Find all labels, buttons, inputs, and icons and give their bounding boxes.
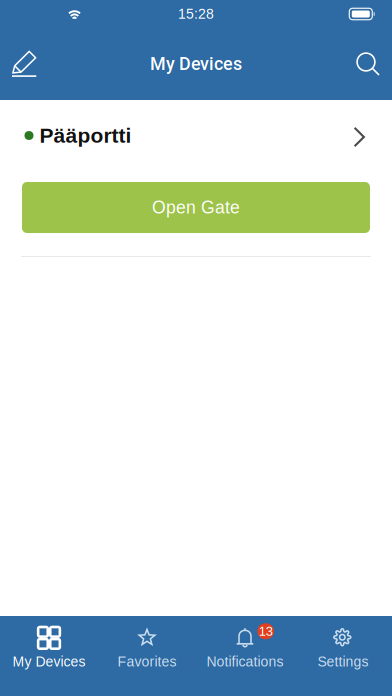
button[interactable]: Settings — [294, 616, 392, 696]
button[interactable]: My Devices — [0, 616, 98, 696]
button[interactable]: Favorites — [98, 616, 196, 696]
button[interactable]: Pääportti — [0, 100, 392, 171]
staticText: 13 — [259, 624, 273, 638]
button[interactable]: 13 — [196, 616, 294, 696]
staticText: My Devices — [150, 53, 242, 74]
staticText: Pääportti — [39, 124, 131, 147]
staticText: Open Gate — [152, 198, 240, 217]
staticText: My Devices — [12, 654, 85, 669]
staticText: Notifications — [206, 654, 283, 669]
staticText: Favorites — [117, 654, 176, 669]
button[interactable]: Search — [342, 40, 392, 88]
button[interactable]: Edit — [0, 38, 51, 89]
button[interactable]: Open Gate — [0, 171, 392, 233]
staticText: 15:28 — [178, 6, 214, 22]
staticText: Settings — [317, 654, 368, 669]
